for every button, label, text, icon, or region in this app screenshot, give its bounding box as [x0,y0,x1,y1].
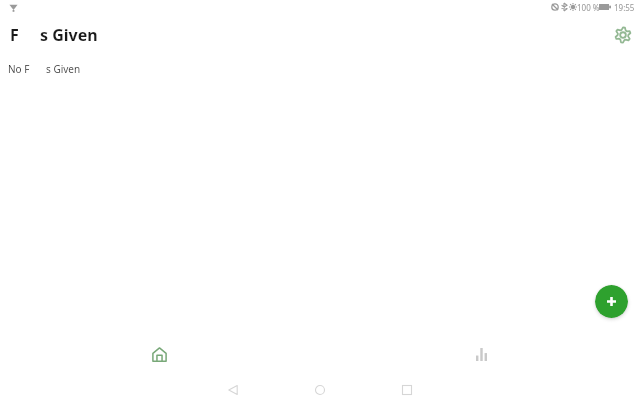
staticText: s Given [46,62,81,76]
staticText: F [10,24,19,46]
staticText: 100 % [577,2,600,13]
staticText: s Given [40,24,98,46]
button[interactable]: Add [595,285,628,318]
button[interactable]: Settings [611,23,635,47]
staticText: 19:55 [614,2,635,13]
staticText: No F [8,62,30,76]
button[interactable]: Statistics [467,340,496,369]
button[interactable]: Back [219,376,247,400]
button[interactable]: Home [145,340,174,369]
button[interactable]: Recent apps [393,376,421,400]
button[interactable]: Home [306,376,334,400]
